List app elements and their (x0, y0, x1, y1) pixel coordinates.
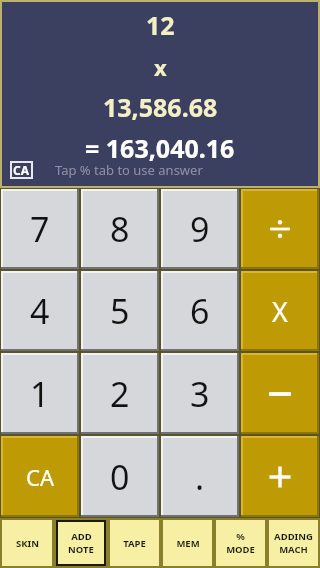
button[interactable]: 4 (3, 273, 77, 349)
button[interactable]: ADDING (269, 520, 318, 566)
button[interactable]: 6 (163, 273, 237, 349)
staticText: 4 (30, 288, 50, 334)
button[interactable]: Plus (243, 438, 317, 515)
button[interactable]: 1 (3, 355, 77, 432)
staticText: 8 (110, 206, 130, 252)
staticText: X (272, 293, 288, 330)
button[interactable]: . (163, 438, 237, 515)
staticText: NOTE (68, 543, 94, 556)
staticText: 12 (146, 8, 175, 42)
button[interactable]: SKIN (2, 520, 52, 566)
button[interactable]: 2 (83, 355, 157, 432)
button[interactable]: 7 (3, 191, 77, 267)
staticText: MACH (279, 543, 308, 556)
staticText: CA (13, 162, 30, 178)
button[interactable]: 0 (83, 438, 157, 515)
staticText: 5 (110, 288, 130, 334)
button[interactable]: 9 (163, 191, 237, 267)
staticText: % (236, 530, 245, 543)
staticText: 13,586.68 (103, 90, 218, 124)
button[interactable]: Clear all (3, 438, 77, 515)
staticText: 7 (30, 206, 50, 252)
staticText: 1 (30, 371, 50, 417)
button[interactable]: Minus (243, 355, 317, 432)
staticText: ADD (71, 530, 92, 543)
staticText: ADDING (274, 530, 313, 543)
staticText: 0 (110, 454, 130, 500)
staticText: MODE (226, 543, 255, 556)
button[interactable]: 5 (83, 273, 157, 349)
staticText: MEM (176, 537, 200, 550)
button[interactable]: MEM (163, 520, 212, 566)
button[interactable]: % (216, 520, 265, 566)
staticText: 6 (190, 288, 210, 334)
staticText: CA (26, 462, 54, 492)
staticText: 9 (190, 206, 210, 252)
button[interactable]: CA (13, 162, 30, 178)
staticText: Tap % tab to use answer (55, 161, 203, 179)
staticText: = 163,040.16 (85, 131, 235, 165)
button[interactable]: 8 (83, 191, 157, 267)
button[interactable]: Divide (243, 191, 317, 267)
staticText: TAPE (123, 537, 146, 550)
staticText: 3 (190, 371, 210, 417)
button[interactable]: ADD (56, 520, 106, 566)
staticText: x (154, 52, 167, 82)
button[interactable]: TAPE (110, 520, 159, 566)
staticText: . (195, 454, 205, 500)
staticText: 2 (110, 371, 130, 417)
staticText: SKIN (16, 537, 39, 550)
button[interactable]: Multiply (243, 273, 317, 349)
button[interactable]: 3 (163, 355, 237, 432)
